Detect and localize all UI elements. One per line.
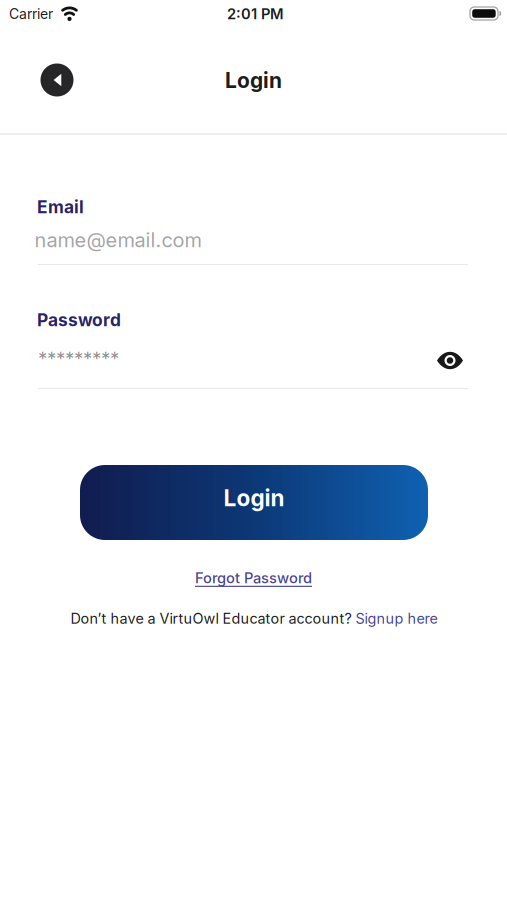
button[interactable]: Signup here [355, 610, 437, 627]
staticText: Login [223, 484, 284, 512]
staticText: Password [37, 309, 121, 330]
staticText: Signup here [355, 610, 437, 627]
staticText: 2:01 PM [227, 5, 284, 23]
staticText: Don’t have a VirtuOwl Educator account? [70, 610, 355, 627]
staticText: Forgot Password [195, 569, 312, 587]
button[interactable]: Login [80, 465, 428, 540]
button[interactable]: Forgot Password [195, 569, 312, 587]
button[interactable]: Show password [436, 351, 463, 369]
staticText: Email [37, 196, 84, 217]
staticText: name@email.com [34, 228, 201, 252]
button[interactable]: Back [40, 63, 73, 96]
staticText: Carrier [9, 5, 53, 22]
staticText: Login [225, 68, 282, 93]
staticText: ********* [38, 347, 119, 369]
